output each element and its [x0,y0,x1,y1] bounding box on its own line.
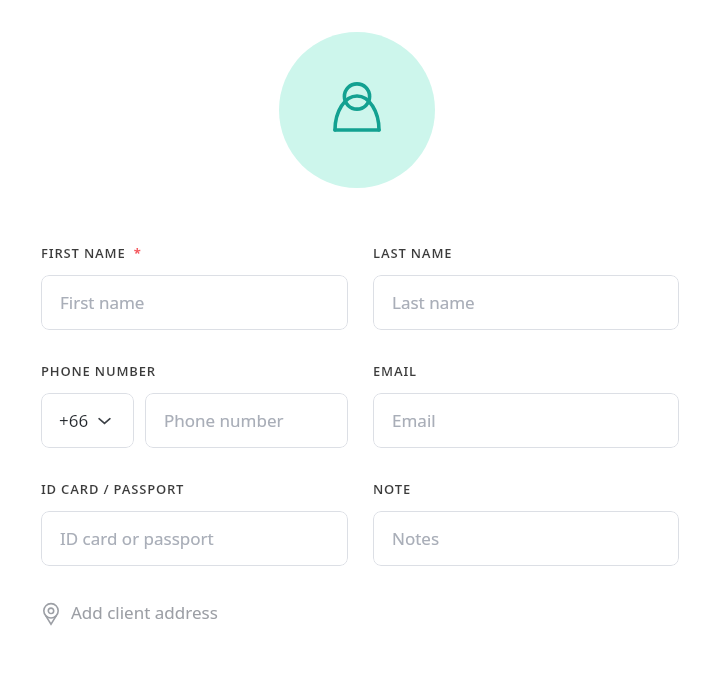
staticText: +66 [59,409,89,432]
staticText: Notes [392,527,440,550]
staticText: Phone number [164,409,284,432]
button[interactable]: Phone number [145,393,348,448]
staticText: Add client address [71,601,218,624]
button[interactable]: Add client address [41,597,218,628]
button[interactable]: ID card or passport [41,511,348,566]
staticText: ID card or passport [60,527,214,550]
staticText: First name [60,291,145,314]
button[interactable]: Last name [373,275,679,330]
button[interactable]: Profile photo [279,32,435,188]
staticText: NOTE [373,480,412,498]
button[interactable]: Email [373,393,679,448]
staticText: Email [392,409,436,432]
staticText: ID CARD / PASSPORT [41,480,185,498]
button[interactable]: First name [41,275,348,330]
staticText: Last name [392,291,475,314]
staticText: LAST NAME [373,244,453,262]
staticText: EMAIL [373,362,417,380]
button[interactable]: Notes [373,511,679,566]
staticText: FIRST NAME * [41,244,142,262]
button[interactable]: +66 [41,393,134,448]
staticText: PHONE NUMBER [41,362,156,380]
